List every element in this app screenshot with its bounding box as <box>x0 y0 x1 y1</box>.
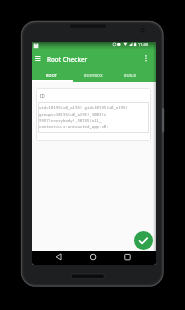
button[interactable]: BUSYBOX <box>75 69 111 81</box>
button[interactable] <box>134 231 153 250</box>
button[interactable] <box>50 249 67 265</box>
staticText: uid=10195(u0_a195) gid=10195(u0_a195) <box>39 105 128 110</box>
button[interactable]: BUILD <box>112 69 148 81</box>
staticText: BUILD <box>124 73 137 78</box>
staticText: BUSYBOX <box>84 73 103 78</box>
staticText: 11:30 <box>138 42 148 47</box>
button[interactable] <box>36 88 151 141</box>
staticText: context=u:r:untrusted_app:s0: <box>39 124 109 129</box>
button[interactable] <box>119 249 136 265</box>
staticText: ROOT <box>46 73 58 78</box>
staticText: groups=10195(u0_a195),3003(i <box>39 112 107 117</box>
staticText: ID <box>40 93 45 99</box>
button[interactable] <box>84 249 101 265</box>
button[interactable]: ROOT <box>34 69 70 81</box>
staticText: Root Checker <box>47 55 88 64</box>
staticText: 9997(everybody),50195(all_ <box>39 118 102 123</box>
button[interactable] <box>32 52 46 64</box>
